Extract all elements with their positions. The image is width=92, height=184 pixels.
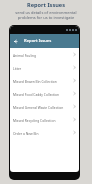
button[interactable]: Litter <box>10 61 79 74</box>
staticText: Report Issues <box>24 38 52 44</box>
staticText: Order a New Bin <box>13 131 72 135</box>
button[interactable]: Back <box>12 38 19 45</box>
button[interactable]: Order a New Bin <box>10 126 79 139</box>
staticText: Missed Brown Bin Collection <box>13 79 72 83</box>
button[interactable]: Missed Recycling Collection <box>10 113 79 126</box>
button[interactable]: Animal Fouling <box>10 48 79 61</box>
staticText: Report Issues <box>27 1 65 9</box>
staticText: send us details of environmental problem… <box>15 10 77 20</box>
staticText: Animal Fouling <box>13 53 72 57</box>
staticText: Missed Recycling Collection <box>13 118 72 122</box>
button[interactable]: Missed Brown Bin Collection <box>10 74 79 87</box>
button[interactable]: Missed General Waste Collection <box>10 100 79 113</box>
staticText: Missed General Waste Collection <box>13 105 72 109</box>
staticText: Missed Food Caddy Collection <box>13 92 72 96</box>
button[interactable]: Missed Food Caddy Collection <box>10 87 79 100</box>
staticText: Litter <box>13 66 72 70</box>
